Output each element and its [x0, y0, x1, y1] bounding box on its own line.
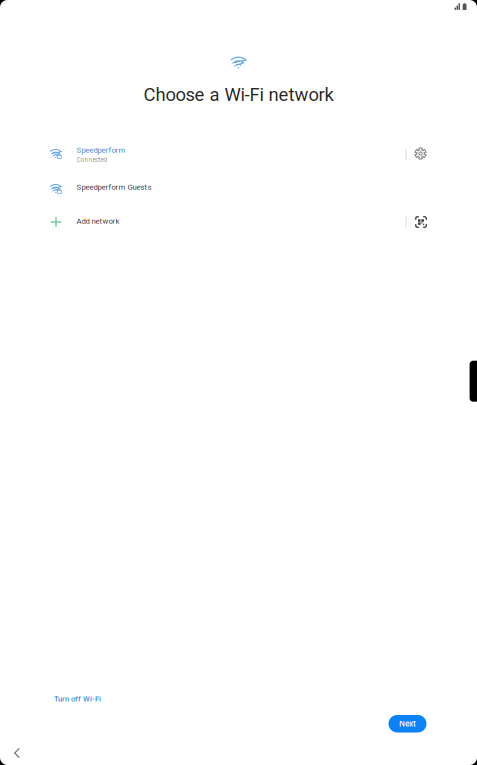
button[interactable]: Back: [9, 745, 25, 761]
staticText: Speedperform: [76, 145, 125, 155]
button[interactable]: Speedperform Guests: [0, 176, 395, 204]
button[interactable]: Next: [388, 715, 426, 732]
button[interactable]: Turn off Wi-Fi: [54, 692, 114, 706]
button[interactable]: Network settings: [410, 143, 430, 163]
button[interactable]: Scan QR code: [411, 212, 431, 232]
button[interactable]: Speedperform: [0, 140, 395, 170]
staticText: Turn off Wi-Fi: [54, 694, 101, 703]
staticText: Next: [399, 719, 416, 729]
button[interactable]: Add network: [0, 210, 395, 238]
staticText: Add network: [76, 216, 119, 226]
staticText: Speedperform Guests: [76, 182, 151, 192]
staticText: Connected: [76, 156, 107, 164]
staticText: Choose a Wi-Fi network: [143, 84, 333, 106]
